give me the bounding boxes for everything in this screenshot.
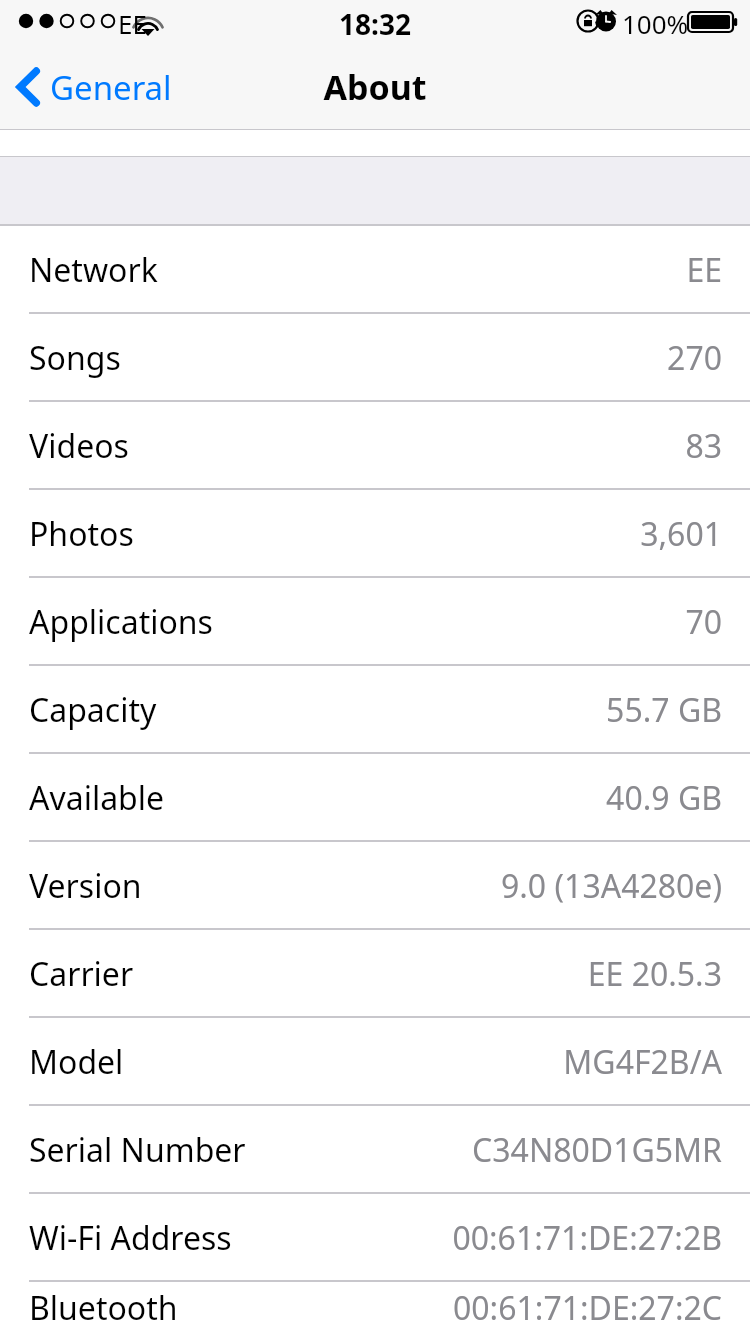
staticText: Bluetooth [29, 1286, 178, 1330]
staticText: General [50, 65, 172, 110]
staticText: 18:32 [339, 5, 411, 43]
staticText: 270 [667, 336, 722, 380]
staticText: About [323, 64, 427, 110]
staticText: 00:61:71:DE:27:2B [452, 1216, 722, 1260]
button[interactable]: Bluetooth [0, 1282, 750, 1334]
button[interactable]: General [0, 44, 200, 130]
staticText: Carrier [29, 952, 134, 996]
button[interactable]: Carrier [0, 930, 750, 1018]
staticText: Capacity [29, 688, 157, 732]
staticText: EE [686, 248, 722, 292]
button[interactable]: Applications [0, 578, 750, 666]
button[interactable]: Songs [0, 314, 750, 402]
staticText: Model [29, 1040, 124, 1084]
staticText: EE 20.5.3 [587, 952, 722, 996]
staticText: Applications [29, 600, 213, 644]
staticText: Wi-Fi Address [29, 1216, 232, 1260]
staticText: 00:61:71:DE:27:2C [453, 1286, 722, 1330]
button[interactable]: Model [0, 1018, 750, 1106]
button[interactable]: Serial Number [0, 1106, 750, 1194]
button[interactable]: Wi-Fi Address [0, 1194, 750, 1282]
button[interactable]: Available [0, 754, 750, 842]
staticText: Videos [29, 424, 129, 468]
button[interactable]: Capacity [0, 666, 750, 754]
staticText: Network [29, 248, 158, 292]
staticText: 83 [685, 424, 722, 468]
button[interactable]: Version [0, 842, 750, 930]
staticText: Songs [29, 336, 121, 380]
button[interactable]: Network [0, 226, 750, 314]
staticText: 70 [685, 600, 722, 644]
staticText: C34N80D1G5MR [472, 1128, 722, 1172]
button[interactable]: Videos [0, 402, 750, 490]
staticText: Serial Number [29, 1128, 246, 1172]
staticText: 100% [622, 6, 689, 41]
staticText: Photos [29, 512, 134, 556]
staticText: 55.7 GB [606, 688, 722, 732]
staticText: Available [29, 776, 165, 820]
staticText: Version [29, 864, 142, 908]
staticText: EE [118, 6, 147, 41]
staticText: MG4F2B/A [563, 1040, 722, 1084]
staticText: 9.0 (13A4280e) [500, 864, 722, 908]
staticText: 3,601 [640, 512, 722, 556]
button[interactable]: Photos [0, 490, 750, 578]
staticText: 40.9 GB [606, 776, 722, 820]
